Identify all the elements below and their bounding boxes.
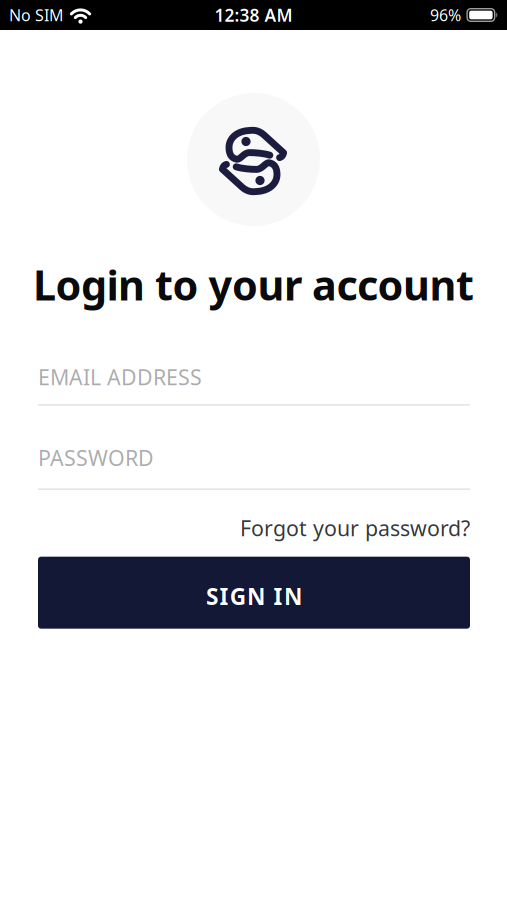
staticText: 96% [430,4,461,26]
staticText: EMAIL ADDRESS [38,363,202,391]
staticText: 12:38 AM [214,3,292,26]
button[interactable]: Forgot your password? [240,514,470,542]
staticText: No SIM [9,4,64,26]
staticText: PASSWORD [38,444,154,472]
staticText: SIGN IN [206,581,302,611]
button[interactable]: SIGN IN [38,557,470,629]
button[interactable]: PASSWORD [38,444,470,490]
staticText: Login to your account [33,257,474,312]
staticText: Forgot your password? [240,514,470,542]
button[interactable]: EMAIL ADDRESS [38,363,470,406]
